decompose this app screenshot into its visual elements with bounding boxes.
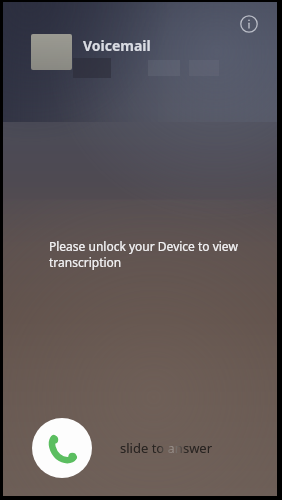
button[interactable]: Answer call <box>32 418 92 478</box>
staticText: Voicemail <box>83 36 151 55</box>
staticText: slide to answer <box>120 439 213 457</box>
button[interactable]: Voicemail <box>81 35 153 56</box>
button[interactable]: slide to answer <box>116 433 217 463</box>
button[interactable]: Information <box>237 12 261 36</box>
staticText: Please unlock your Device to view transc… <box>49 238 249 271</box>
